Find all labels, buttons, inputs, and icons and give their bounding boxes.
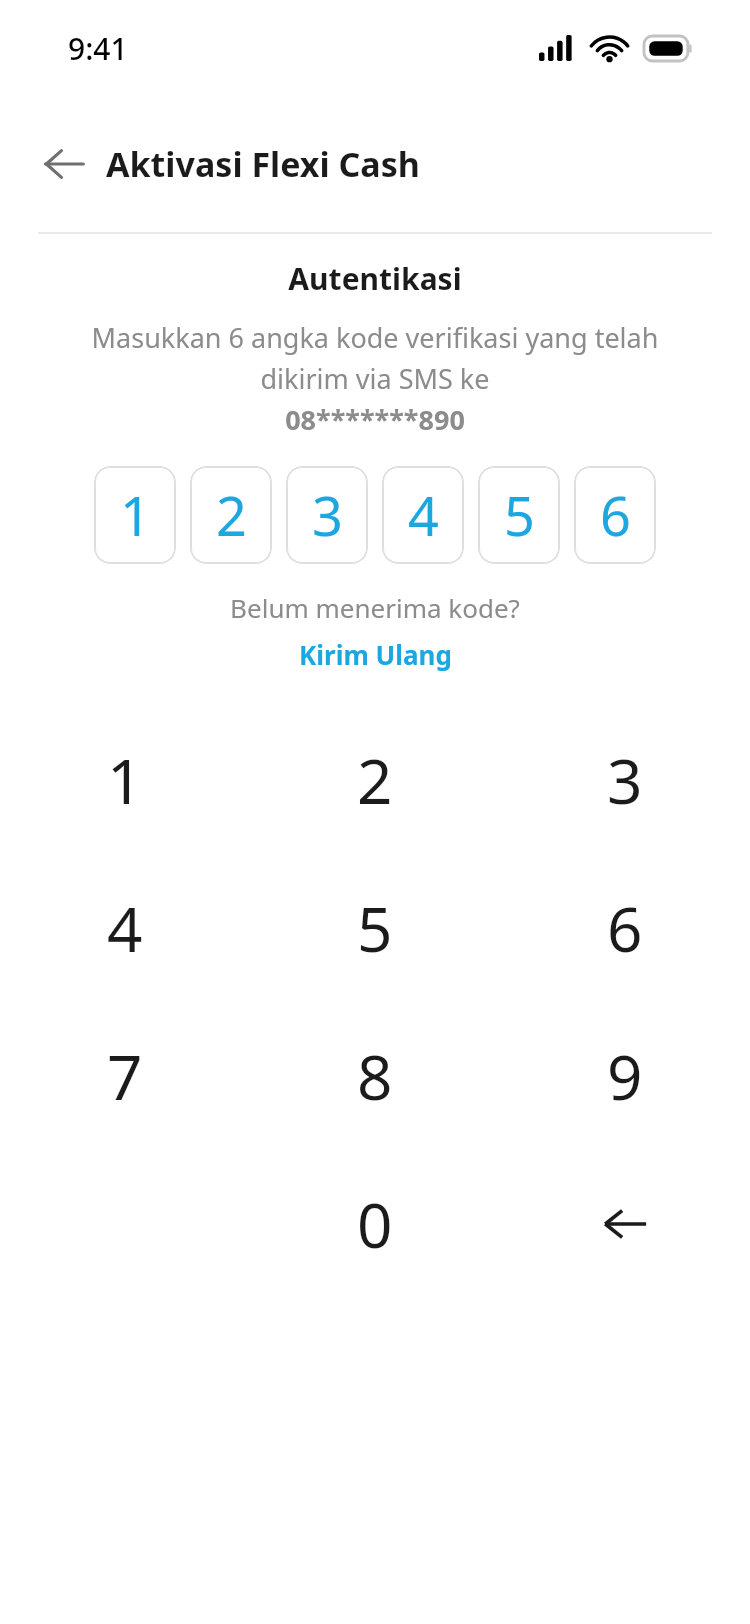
staticText: 6	[607, 886, 643, 970]
button[interactable]: 9	[500, 1002, 750, 1150]
staticText: 08*******890	[0, 401, 750, 438]
button[interactable]: 3	[286, 466, 368, 564]
staticText: 8	[357, 1034, 393, 1118]
staticText: 6	[600, 478, 631, 552]
staticText: 1	[107, 738, 143, 822]
button[interactable]: 5	[250, 854, 500, 1002]
staticText: 4	[408, 478, 439, 552]
staticText: 0	[357, 1182, 393, 1266]
staticText: 4	[107, 886, 143, 970]
button[interactable]: Kirim Ulang	[0, 637, 750, 672]
staticText: Belum menerima kode?	[0, 590, 750, 625]
staticText: 2	[216, 478, 247, 552]
button[interactable]: 5	[478, 466, 560, 564]
staticText: Kirim Ulang	[299, 637, 452, 672]
staticText: 3	[312, 478, 343, 552]
staticText: 5	[357, 886, 393, 970]
button[interactable]: 1	[94, 466, 176, 564]
staticText: Aktivasi Flexi Cash	[106, 141, 420, 187]
staticText: 3	[607, 738, 643, 822]
staticText: Autentikasi	[0, 258, 750, 299]
button[interactable]: 3	[500, 706, 750, 854]
button[interactable]: 1	[0, 706, 250, 854]
button[interactable]: Backspace	[500, 1150, 750, 1298]
button[interactable]: 6	[574, 466, 656, 564]
staticText: Masukkan 6 angka kode verifikasi yang te…	[30, 319, 720, 397]
button[interactable]: 2	[250, 706, 500, 854]
button[interactable]: 2	[190, 466, 272, 564]
button[interactable]: 6	[500, 854, 750, 1002]
button[interactable]: Back	[26, 126, 102, 202]
staticText: 5	[504, 478, 535, 552]
staticText: 7	[107, 1034, 143, 1118]
button[interactable]: 0	[250, 1150, 500, 1298]
button[interactable]: 4	[0, 854, 250, 1002]
staticText: 1	[120, 478, 151, 552]
button[interactable]: 7	[0, 1002, 250, 1150]
button[interactable]: 4	[382, 466, 464, 564]
button[interactable]: 8	[250, 1002, 500, 1150]
staticText: 2	[357, 738, 393, 822]
staticText: 9	[607, 1034, 643, 1118]
staticText: 9:41	[68, 28, 128, 69]
